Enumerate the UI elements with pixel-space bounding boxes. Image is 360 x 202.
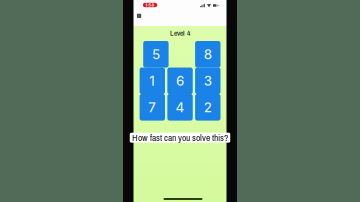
staticText: 3 — [204, 73, 212, 89]
staticText: 4 — [175, 99, 184, 115]
staticText: 1:58 — [146, 3, 155, 7]
button[interactable]: 4 — [167, 94, 193, 121]
staticText: 1 — [149, 73, 155, 89]
button[interactable]: 6 — [167, 67, 193, 94]
staticText: 8 — [204, 46, 212, 62]
button[interactable]: 7 — [140, 94, 165, 121]
button[interactable]: 1 — [140, 67, 165, 94]
staticText: Level 4 — [170, 28, 190, 38]
button[interactable]: 8 — [195, 41, 220, 68]
button[interactable]: 2 — [195, 94, 220, 121]
staticText: 5 — [152, 46, 160, 62]
staticText: 2 — [204, 99, 212, 115]
staticText: 7 — [148, 99, 156, 115]
button[interactable]: 3 — [195, 67, 220, 94]
staticText: 6 — [176, 73, 184, 89]
staticText: How fast can you solve this? — [132, 131, 228, 144]
button[interactable]: 5 — [143, 41, 169, 68]
